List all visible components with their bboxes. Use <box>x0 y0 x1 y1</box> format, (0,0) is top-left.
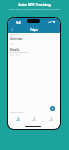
button[interactable]: Routes <box>27 115 41 123</box>
staticText: Track routes, miles, timestamps and trip… <box>9 7 60 10</box>
staticText: Overview <box>10 37 23 41</box>
staticText: TRIP 1027 <box>10 33 20 36</box>
button[interactable]: Add trip <box>50 106 55 111</box>
button[interactable]: Back <box>11 28 14 31</box>
staticText: Distance & duration <box>10 51 29 54</box>
staticText: Trips <box>30 28 38 32</box>
staticText: Recent activity <box>10 111 24 114</box>
button[interactable]: Profile <box>44 115 58 123</box>
button[interactable]: Trips <box>11 115 25 123</box>
staticText: Details <box>10 48 19 52</box>
staticText: · Mar 14 <box>21 33 29 36</box>
staticText: Auto GPS Tracking <box>18 2 51 7</box>
staticText: 9:41 <box>16 21 22 25</box>
